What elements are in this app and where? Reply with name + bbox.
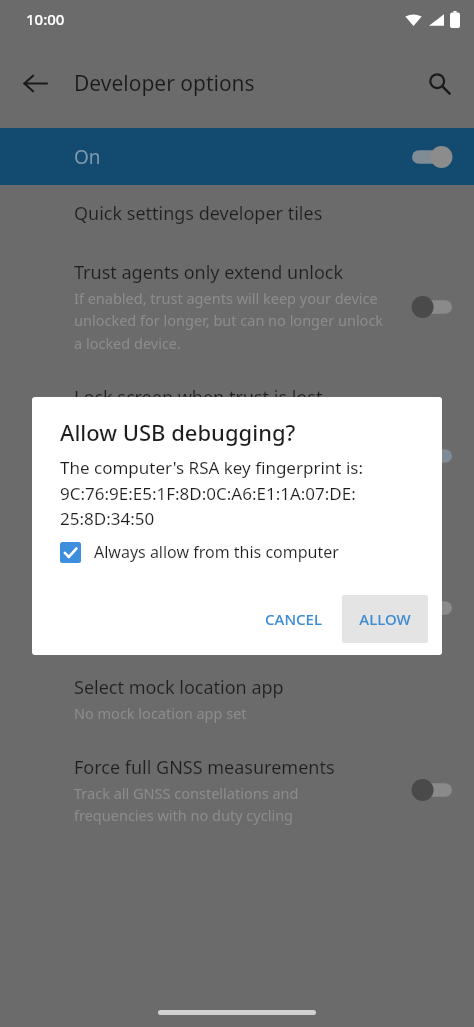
- button[interactable]: USB debugging: [0, 420, 474, 498]
- staticText: Developer options: [74, 69, 255, 98]
- staticText: ALLOW: [359, 609, 411, 629]
- staticText: Track all GNSS constellations and freque…: [74, 783, 299, 825]
- staticText: 10:00: [26, 9, 65, 29]
- button[interactable]: Select mock location app: [0, 663, 474, 745]
- button[interactable]: Bug report shortcut: [0, 563, 474, 663]
- staticText: USB debugging: [74, 432, 206, 457]
- staticText: Force full GNSS measurements: [74, 755, 335, 780]
- button[interactable]: Lock screen when trust is lost: [0, 373, 474, 420]
- staticText: Revoke USB debugging authorizations: [74, 514, 399, 539]
- staticText: Trust agents only extend unlock: [74, 260, 344, 285]
- button[interactable]: Search: [412, 56, 466, 110]
- staticText: No mock location app set: [74, 703, 247, 723]
- staticText: Show a button in the power menu for taki…: [74, 601, 388, 643]
- staticText: Always allow from this computer: [94, 541, 339, 563]
- button[interactable]: Force full GNSS measurements: [0, 745, 474, 841]
- button[interactable]: Back: [8, 56, 62, 110]
- button[interactable]: On: [0, 128, 474, 185]
- button[interactable]: Always allow from this computer: [32, 539, 442, 565]
- staticText: Debug mode when USB is connected: [74, 460, 326, 480]
- staticText: If enabled, trust agents will keep your …: [74, 288, 384, 353]
- button[interactable]: Revoke USB debugging authorizations: [0, 498, 474, 563]
- staticText: On: [74, 144, 101, 170]
- button[interactable]: ALLOW: [342, 595, 428, 643]
- staticText: Select mock location app: [74, 675, 284, 700]
- button[interactable]: Quick settings developer tiles: [0, 185, 474, 248]
- button[interactable]: CANCEL: [251, 598, 336, 640]
- staticText: CANCEL: [265, 609, 322, 629]
- staticText: Lock screen when trust is lost: [74, 385, 323, 410]
- button[interactable]: Trust agents only extend unlock: [0, 248, 474, 373]
- staticText: Quick settings developer tiles: [74, 201, 323, 226]
- staticText: The computer's RSA key fingerprint is: 9…: [60, 456, 363, 530]
- staticText: Allow USB debugging?: [60, 417, 296, 447]
